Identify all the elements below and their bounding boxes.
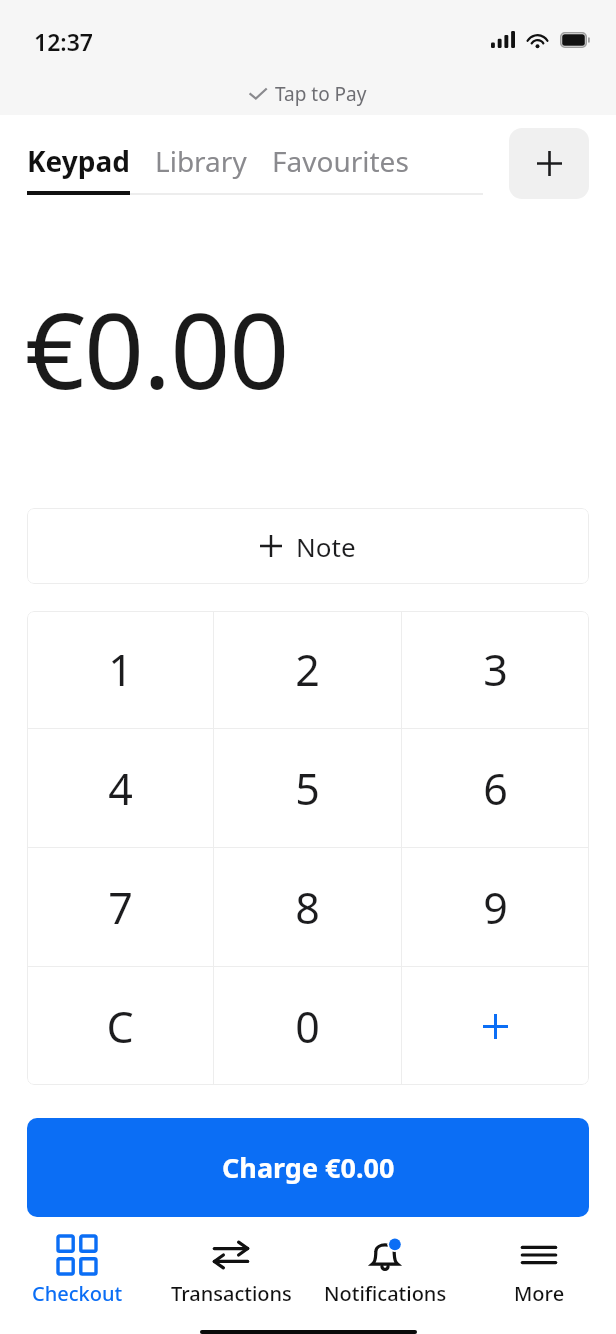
staticText: Library	[155, 142, 247, 180]
button[interactable]: 8	[214, 848, 401, 966]
button[interactable]: 2	[214, 611, 401, 728]
button[interactable]: 9	[402, 848, 589, 966]
staticText: 7	[108, 878, 133, 937]
staticText: Keypad	[27, 142, 130, 180]
button[interactable]: Note	[27, 508, 589, 584]
staticText: €0.00	[25, 277, 289, 420]
button[interactable]: Transactions	[154, 1217, 308, 1322]
button[interactable]: Charge €0.00	[27, 1118, 589, 1217]
button[interactable]: Favourites	[272, 142, 409, 180]
staticText: Tap to Pay	[275, 81, 367, 107]
button[interactable]: C	[27, 967, 213, 1085]
staticText: Charge €0.00	[222, 1149, 395, 1186]
button[interactable]: More	[462, 1217, 616, 1322]
staticText: Notifications	[324, 1280, 447, 1307]
button[interactable]: Notifications	[308, 1217, 462, 1322]
button[interactable]: 0	[214, 967, 401, 1085]
staticText: 6	[483, 759, 508, 818]
staticText: Checkout	[32, 1280, 123, 1307]
button[interactable]: 5	[214, 729, 401, 847]
button[interactable]	[402, 967, 589, 1085]
staticText: 1	[108, 640, 133, 699]
staticText: 12:37	[34, 26, 93, 57]
staticText: 0	[295, 997, 320, 1056]
button[interactable]: 3	[402, 611, 589, 728]
staticText: 4	[108, 759, 133, 818]
button[interactable]: Checkout	[0, 1217, 154, 1322]
button[interactable]: Add	[509, 128, 589, 199]
staticText: Favourites	[272, 142, 409, 180]
staticText: 5	[295, 759, 320, 818]
staticText: 8	[295, 878, 320, 937]
button[interactable]: 4	[27, 729, 213, 847]
staticText: Transactions	[171, 1280, 292, 1307]
staticText: 3	[483, 640, 508, 699]
button[interactable]: Keypad	[27, 142, 130, 180]
staticText: Note	[296, 529, 356, 564]
staticText: 2	[295, 640, 320, 699]
button[interactable]: 1	[27, 611, 213, 728]
button[interactable]: 7	[27, 848, 213, 966]
staticText: More	[514, 1280, 565, 1307]
button[interactable]: 6	[402, 729, 589, 847]
button[interactable]: Library	[155, 142, 247, 180]
staticText: 9	[483, 878, 508, 937]
staticText: C	[106, 997, 134, 1056]
